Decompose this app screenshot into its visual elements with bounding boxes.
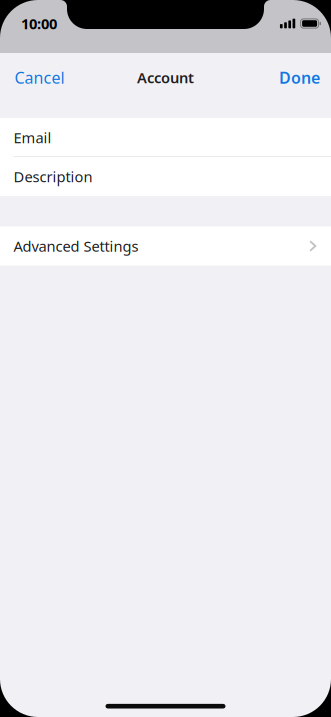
staticText: Cancel <box>14 67 64 88</box>
staticText: Description <box>13 167 92 186</box>
staticText: Email <box>13 128 51 147</box>
staticText: 10:00 <box>21 14 57 33</box>
button[interactable]: Advanced Settings <box>0 226 331 265</box>
staticText: Account <box>137 68 194 87</box>
staticText: Advanced Settings <box>13 236 138 256</box>
button[interactable]: Email <box>0 118 331 157</box>
button[interactable]: Cancel <box>0 58 79 97</box>
staticText: Done <box>279 67 320 88</box>
button[interactable]: Done <box>264 58 331 97</box>
button[interactable]: Description <box>0 157 331 196</box>
